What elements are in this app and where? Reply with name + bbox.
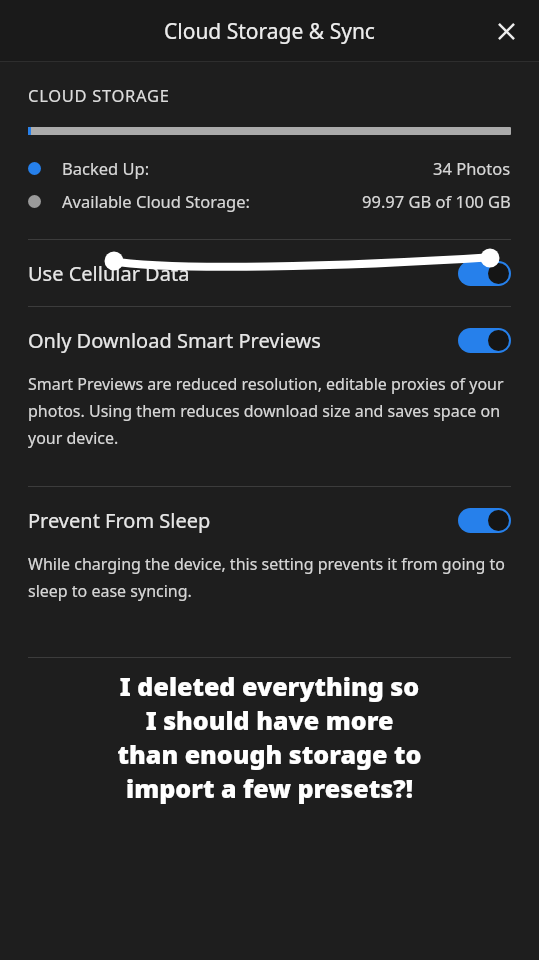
- button[interactable]: Close: [484, 9, 528, 53]
- staticText: Available Cloud Storage:: [62, 190, 250, 212]
- button[interactable]: Toggle on: [458, 508, 511, 533]
- staticText: I deleted everything so I should have mo…: [28, 669, 511, 805]
- staticText: While charging the device, this setting …: [28, 553, 511, 602]
- staticText: Only Download Smart Previews: [28, 327, 458, 354]
- staticText: CLOUD STORAGE: [28, 84, 170, 106]
- staticText: Prevent From Sleep: [28, 507, 458, 534]
- staticText: Use Cellular Data: [28, 260, 458, 287]
- staticText: Smart Previews are reduced resolution, e…: [28, 373, 511, 449]
- staticText: 99.97 GB of 100 GB: [362, 190, 511, 212]
- button[interactable]: Toggle on: [458, 328, 511, 353]
- staticText: Backed Up:: [62, 157, 150, 179]
- button[interactable]: Only Download Smart Previews: [28, 307, 511, 373]
- button[interactable]: Prevent From Sleep: [28, 487, 511, 553]
- button[interactable]: Use Cellular Data: [28, 240, 511, 306]
- staticText: 34 Photos: [433, 157, 511, 179]
- button[interactable]: Toggle on: [458, 261, 511, 286]
- staticText: Cloud Storage & Sync: [164, 17, 375, 46]
